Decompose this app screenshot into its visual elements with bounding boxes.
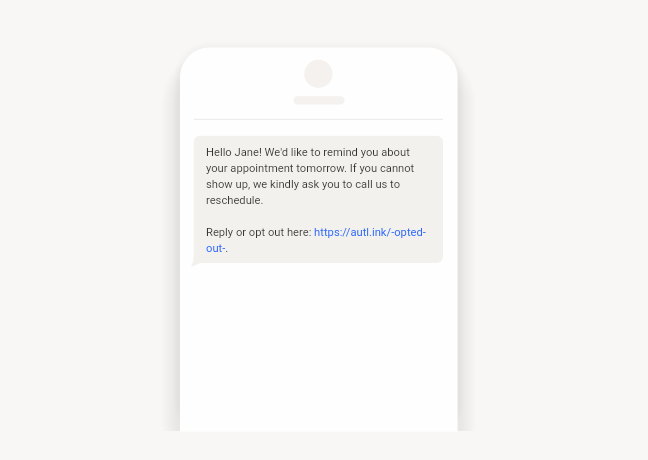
button[interactable]	[194, 136, 443, 263]
button[interactable]: Open opt out link	[206, 243, 225, 255]
button[interactable]: Open opt out link	[315, 227, 426, 239]
button[interactable]: Hello Jane! We'd like to remind you abou…	[206, 144, 428, 256]
staticText: Hello Jane! We'd like to remind you abou…	[206, 144, 428, 256]
button[interactable]: Contact avatar	[304, 60, 332, 88]
